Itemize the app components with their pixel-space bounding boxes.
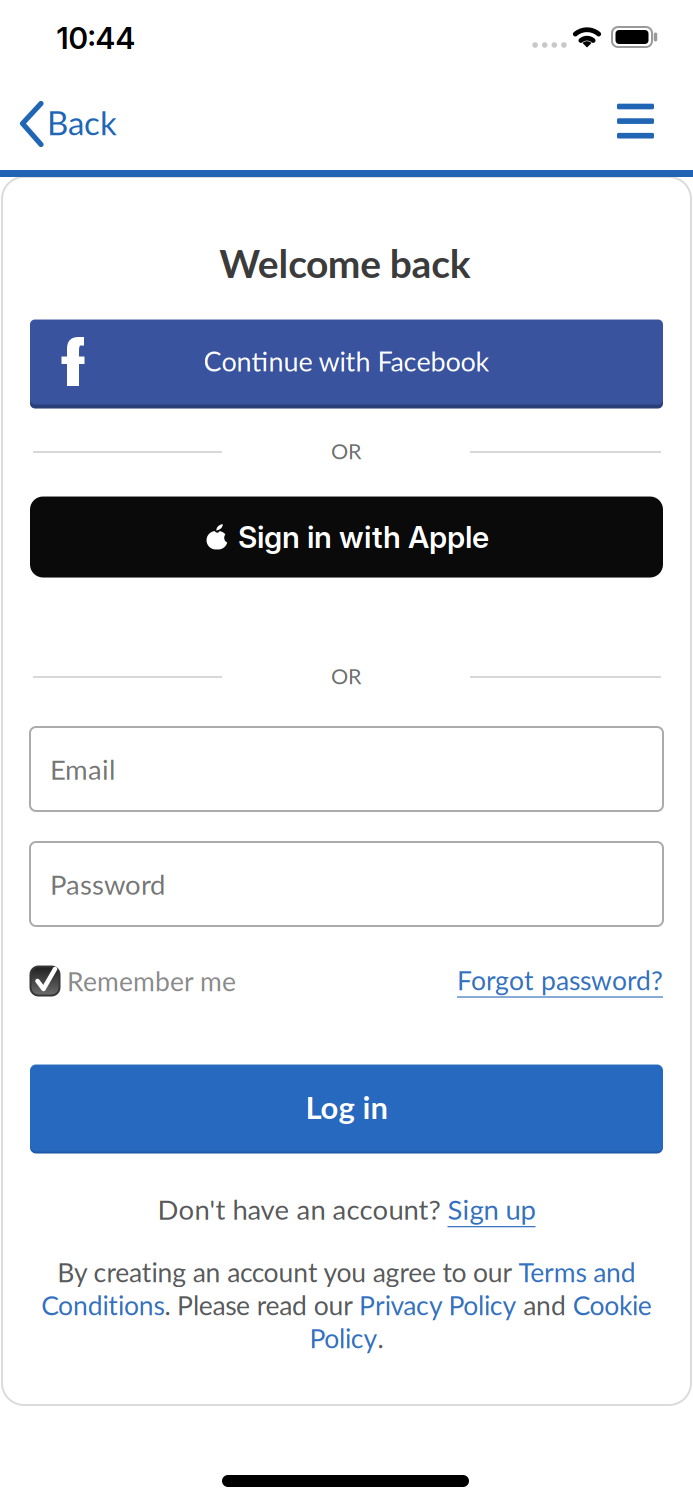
staticText: Log in bbox=[305, 1088, 387, 1126]
staticText: Cookie bbox=[573, 1289, 652, 1321]
staticText: Back bbox=[47, 103, 117, 142]
staticText: Terms and bbox=[518, 1256, 636, 1288]
staticText: OR bbox=[331, 663, 361, 689]
staticText: Sign in with Apple bbox=[238, 519, 489, 555]
staticText: . Please read our bbox=[164, 1289, 359, 1321]
staticText: Password bbox=[50, 867, 165, 900]
staticText: 10:44 bbox=[56, 20, 135, 56]
staticText: Privacy Policy bbox=[359, 1289, 516, 1321]
staticText: Forgot password? bbox=[457, 964, 663, 996]
staticText: Policy bbox=[309, 1322, 377, 1354]
staticText: Sign up bbox=[447, 1192, 535, 1225]
staticText: OR bbox=[331, 438, 361, 464]
staticText: . bbox=[377, 1322, 383, 1354]
staticText: Conditions bbox=[41, 1289, 164, 1321]
staticText: Email bbox=[50, 752, 115, 785]
staticText: By creating an account you agree to our bbox=[57, 1256, 518, 1288]
staticText: Continue with Facebook bbox=[203, 345, 489, 377]
staticText: and bbox=[516, 1289, 573, 1321]
staticText: Welcome back bbox=[219, 240, 471, 286]
staticText: Don't have an account? bbox=[157, 1192, 447, 1225]
staticText: Remember me bbox=[67, 965, 236, 997]
